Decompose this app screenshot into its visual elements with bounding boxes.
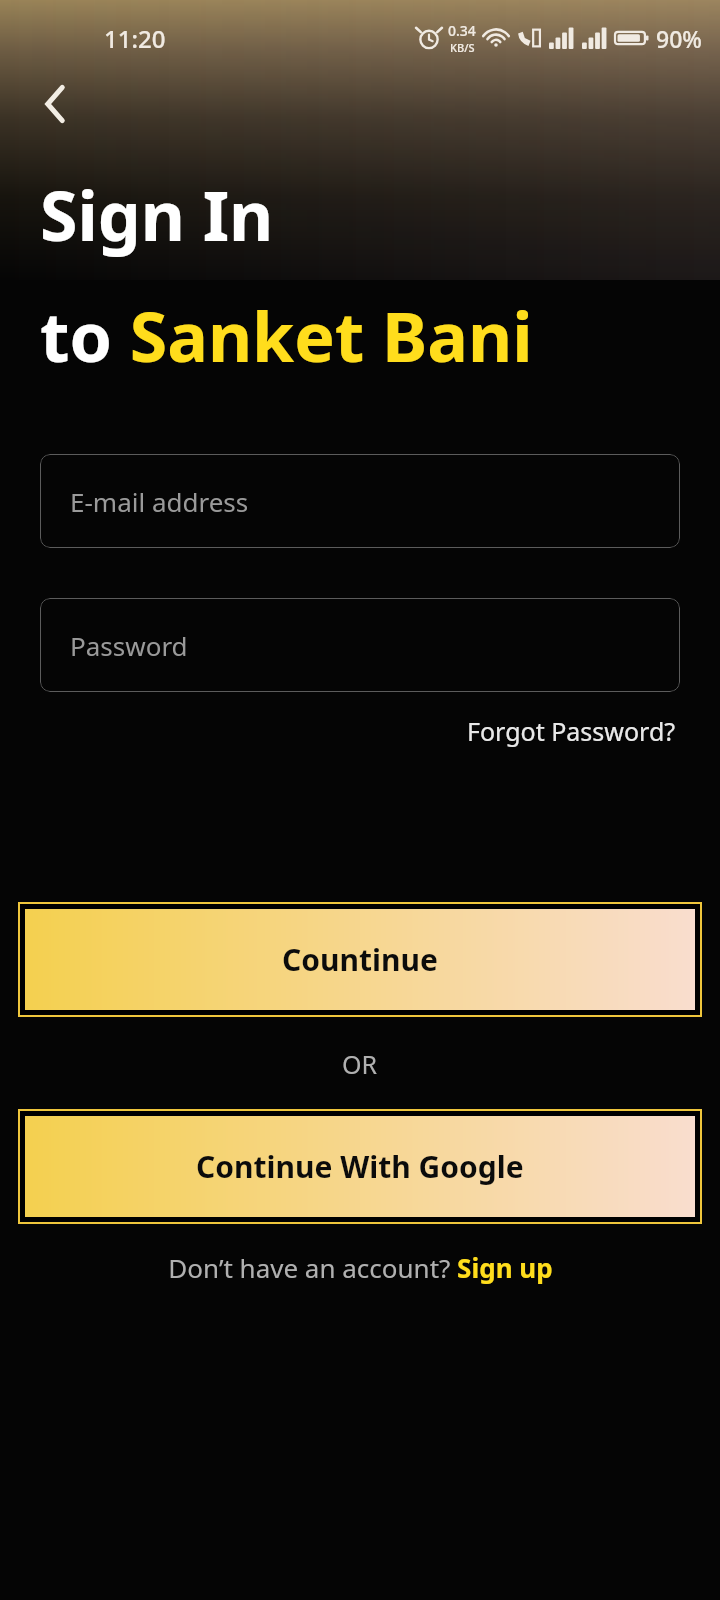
staticText: to Sanket Bani <box>40 289 533 382</box>
button[interactable]: Don’t have an account? Sign up <box>160 1246 561 1289</box>
staticText: Sign In <box>40 168 274 261</box>
staticText: OR <box>342 1047 378 1081</box>
staticText: Don’t have an account? Sign up <box>168 1250 553 1285</box>
button[interactable]: Password <box>40 598 680 692</box>
staticText: Forgot Password? <box>467 714 676 748</box>
button[interactable]: Forgot Password? <box>463 710 680 752</box>
staticText: Password <box>70 628 188 663</box>
button[interactable]: E-mail address <box>40 454 680 548</box>
staticText: Continue With Google <box>196 1146 524 1187</box>
staticText: KB/S <box>450 40 475 55</box>
staticText: 90% <box>656 23 702 54</box>
staticText: 11:20 <box>104 22 166 55</box>
staticText: 0.34 <box>448 21 476 40</box>
button[interactable]: Continue With Google <box>18 1109 702 1224</box>
button[interactable]: Back <box>27 76 83 132</box>
button[interactable]: Countinue <box>18 902 702 1017</box>
staticText: Countinue <box>282 939 438 980</box>
staticText: E-mail address <box>70 484 249 519</box>
